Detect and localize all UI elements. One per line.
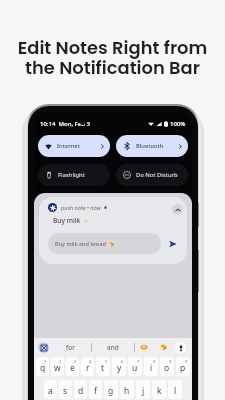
- button[interactable]: w: [51, 357, 64, 376]
- staticText: 7: [137, 359, 140, 365]
- staticText: l: [174, 385, 177, 397]
- staticText: e: [70, 362, 75, 374]
- staticText: 2: [59, 359, 62, 365]
- staticText: push note • now: [61, 204, 101, 211]
- staticText: i: [150, 362, 153, 374]
- staticText: o: [164, 362, 170, 374]
- button[interactable]: i: [144, 357, 158, 376]
- staticText: q: [40, 362, 46, 374]
- button[interactable]: Buy milk and bread: [48, 233, 161, 254]
- staticText: 10:14 Mon, Feb 3: [40, 120, 90, 128]
- staticText: w: [54, 362, 61, 374]
- button[interactable]: Flashlight: [38, 164, 110, 186]
- button[interactable]: f: [89, 380, 102, 399]
- button[interactable]: Emoji: [38, 342, 49, 353]
- button[interactable]: o: [160, 357, 174, 376]
- staticText: Flashlight: [58, 171, 85, 179]
- staticText: 100%: [170, 120, 186, 128]
- staticText: 6: [121, 359, 124, 365]
- staticText: t: [101, 362, 105, 374]
- button[interactable]: Voice input: [175, 342, 186, 353]
- button[interactable]: j: [136, 380, 150, 399]
- staticText: f: [94, 385, 97, 397]
- staticText: g: [108, 385, 114, 397]
- staticText: 9: [169, 359, 172, 365]
- button[interactable]: d: [74, 380, 87, 399]
- staticText: k: [157, 385, 162, 397]
- button[interactable]: Internet: [38, 135, 110, 157]
- button[interactable]: a: [44, 380, 57, 399]
- button[interactable]: Bluetooth: [116, 135, 188, 157]
- button[interactable]: u: [128, 357, 142, 376]
- staticText: 1: [44, 359, 47, 365]
- button[interactable]: Do Not Disturb: [116, 164, 188, 186]
- staticText: Buy milk and bread: [55, 240, 106, 248]
- staticText: u: [132, 362, 138, 374]
- button[interactable]: p: [176, 357, 190, 376]
- staticText: Internet: [57, 142, 80, 150]
- button[interactable]: q: [36, 357, 49, 376]
- button[interactable]: e: [66, 357, 79, 376]
- staticText: 5: [105, 359, 108, 365]
- button[interactable]: k: [152, 380, 166, 399]
- button[interactable]: g: [104, 380, 118, 399]
- staticText: for: [66, 343, 75, 352]
- staticText: 0: [185, 359, 188, 365]
- staticText: and: [107, 343, 119, 352]
- staticText: 4: [89, 359, 92, 365]
- button[interactable]: t: [96, 357, 110, 376]
- button[interactable]: s: [59, 380, 72, 399]
- staticText: 8: [153, 359, 156, 365]
- button[interactable]: r: [81, 357, 94, 376]
- staticText: p: [180, 362, 186, 374]
- staticText: h: [124, 385, 130, 397]
- staticText: Do Not Disturb: [136, 171, 178, 179]
- staticText: Buy milk: [53, 216, 81, 225]
- button[interactable]: h: [120, 380, 134, 399]
- staticText: r: [86, 362, 90, 374]
- staticText: j: [142, 385, 145, 397]
- staticText: Bluetooth: [136, 142, 164, 150]
- button[interactable]: Collapse: [172, 204, 183, 215]
- button[interactable]: Send: [166, 237, 180, 251]
- staticText: y: [117, 362, 122, 374]
- button[interactable]: l: [168, 380, 182, 399]
- button[interactable]: y: [112, 357, 126, 376]
- staticText: Edit Notes Right from the Notification B…: [0, 35, 225, 80]
- staticText: a: [48, 385, 53, 397]
- staticText: s: [63, 385, 68, 397]
- staticText: 3: [74, 359, 77, 365]
- staticText: d: [78, 385, 84, 397]
